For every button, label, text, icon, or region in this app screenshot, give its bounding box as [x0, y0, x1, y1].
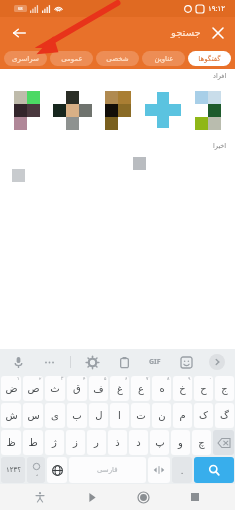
- staticText: 68: [18, 6, 23, 11]
- button[interactable]: Home: [132, 486, 154, 508]
- button[interactable]: ف: [89, 376, 108, 401]
- button[interactable]: فارسی: [69, 457, 146, 483]
- staticText: ن: [158, 410, 166, 422]
- staticText: ز: [73, 437, 78, 449]
- button[interactable]: ج: [215, 376, 234, 401]
- button[interactable]: ی: [45, 403, 65, 428]
- button[interactable]: Add person: [142, 89, 184, 131]
- staticText: م: [179, 410, 186, 422]
- button[interactable]: ص: [23, 376, 43, 401]
- staticText: ب: [72, 410, 82, 422]
- button[interactable]: ظ: [1, 430, 21, 455]
- staticText: ج: [221, 383, 228, 395]
- button[interactable]: Search: [194, 457, 234, 483]
- button[interactable]: عناوین: [142, 51, 185, 66]
- button[interactable]: چ: [192, 430, 211, 455]
- staticText: ۳: [61, 376, 64, 381]
- staticText: خ: [179, 383, 186, 395]
- button[interactable]: گ: [215, 403, 234, 428]
- button[interactable]: Backspace: [213, 430, 234, 455]
- staticText: فارسی: [97, 466, 118, 474]
- staticText: ،: [36, 470, 38, 477]
- button[interactable]: ۱۲۳؟: [1, 457, 25, 483]
- button[interactable]: ه: [152, 376, 171, 401]
- button[interactable]: ش: [1, 403, 21, 428]
- button[interactable]: ق: [67, 376, 87, 401]
- staticText: غ: [117, 383, 123, 395]
- button[interactable]: س: [23, 403, 43, 428]
- button[interactable]: Expand toolbar: [207, 352, 227, 372]
- button[interactable]: [6, 89, 48, 131]
- staticText: گفتگوها: [198, 55, 221, 63]
- button[interactable]: م: [173, 403, 192, 428]
- staticText: ی: [51, 410, 59, 422]
- button[interactable]: خ: [173, 376, 192, 401]
- button[interactable]: ا: [110, 403, 129, 428]
- button[interactable]: ز: [66, 430, 85, 455]
- button[interactable]: ض: [1, 376, 21, 401]
- button[interactable]: شخصی: [96, 51, 139, 66]
- button[interactable]: سراسری: [4, 51, 47, 66]
- staticText: ص: [27, 383, 40, 395]
- staticText: .: [181, 465, 184, 476]
- staticText: عناوین: [154, 55, 174, 63]
- staticText: ۸: [167, 376, 170, 381]
- staticText: ۱۲۳؟: [6, 466, 21, 474]
- button[interactable]: ر: [87, 430, 106, 455]
- staticText: ۱۹:۱۲: [208, 4, 225, 14]
- staticText: ت: [136, 410, 146, 422]
- button[interactable]: ژ: [45, 430, 64, 455]
- button[interactable]: ک: [194, 403, 213, 428]
- button[interactable]: ب: [67, 403, 87, 428]
- button[interactable]: .: [172, 457, 192, 483]
- button[interactable]: Back: [6, 20, 32, 46]
- button[interactable]: [51, 89, 93, 131]
- staticText: ژ: [52, 437, 57, 449]
- button[interactable]: ت: [131, 403, 150, 428]
- staticText: گ: [220, 410, 229, 422]
- button[interactable]: Settings: [82, 352, 102, 372]
- staticText: ا: [118, 410, 121, 422]
- button[interactable]: ث: [45, 376, 65, 401]
- button[interactable]: و: [171, 430, 190, 455]
- button[interactable]: GIF: [145, 352, 165, 372]
- button[interactable]: ع: [131, 376, 150, 401]
- button[interactable]: Change language: [47, 457, 67, 483]
- button[interactable]: More options: [39, 352, 59, 372]
- button[interactable]: جستجو: [171, 27, 201, 39]
- button[interactable]: پ: [150, 430, 169, 455]
- staticText: ۴: [83, 376, 86, 381]
- button[interactable]: Back: [81, 486, 103, 508]
- staticText: د: [136, 437, 141, 449]
- button[interactable]: [187, 89, 229, 131]
- button[interactable]: ن: [152, 403, 171, 428]
- button[interactable]: د: [129, 430, 148, 455]
- button[interactable]: ذ: [108, 430, 127, 455]
- button[interactable]: Emoji: [27, 457, 45, 483]
- button[interactable]: Stickers: [176, 352, 196, 372]
- staticText: ظ: [6, 437, 16, 449]
- staticText: سراسری: [12, 55, 39, 63]
- staticText: ۷: [146, 376, 149, 381]
- button[interactable]: گفتگوها: [188, 51, 231, 66]
- staticText: ع: [138, 383, 144, 395]
- staticText: ذ: [115, 437, 120, 449]
- button[interactable]: Recents: [184, 486, 206, 508]
- button[interactable]: غ: [110, 376, 129, 401]
- button[interactable]: عمومی: [50, 51, 93, 66]
- staticText: GIF: [149, 357, 161, 367]
- button[interactable]: Clear: [207, 22, 229, 44]
- button[interactable]: ل: [89, 403, 108, 428]
- staticText: ش: [5, 410, 18, 422]
- staticText: اخیرا: [213, 142, 227, 150]
- button[interactable]: [97, 89, 139, 131]
- staticText: ل: [95, 410, 103, 422]
- button[interactable]: Accessibility: [29, 486, 51, 508]
- button[interactable]: Clipboard: [114, 352, 134, 372]
- button[interactable]: ح: [194, 376, 213, 401]
- button[interactable]: ط: [23, 430, 43, 455]
- button[interactable]: Move cursor: [148, 457, 170, 483]
- button[interactable]: Voice input: [8, 352, 28, 372]
